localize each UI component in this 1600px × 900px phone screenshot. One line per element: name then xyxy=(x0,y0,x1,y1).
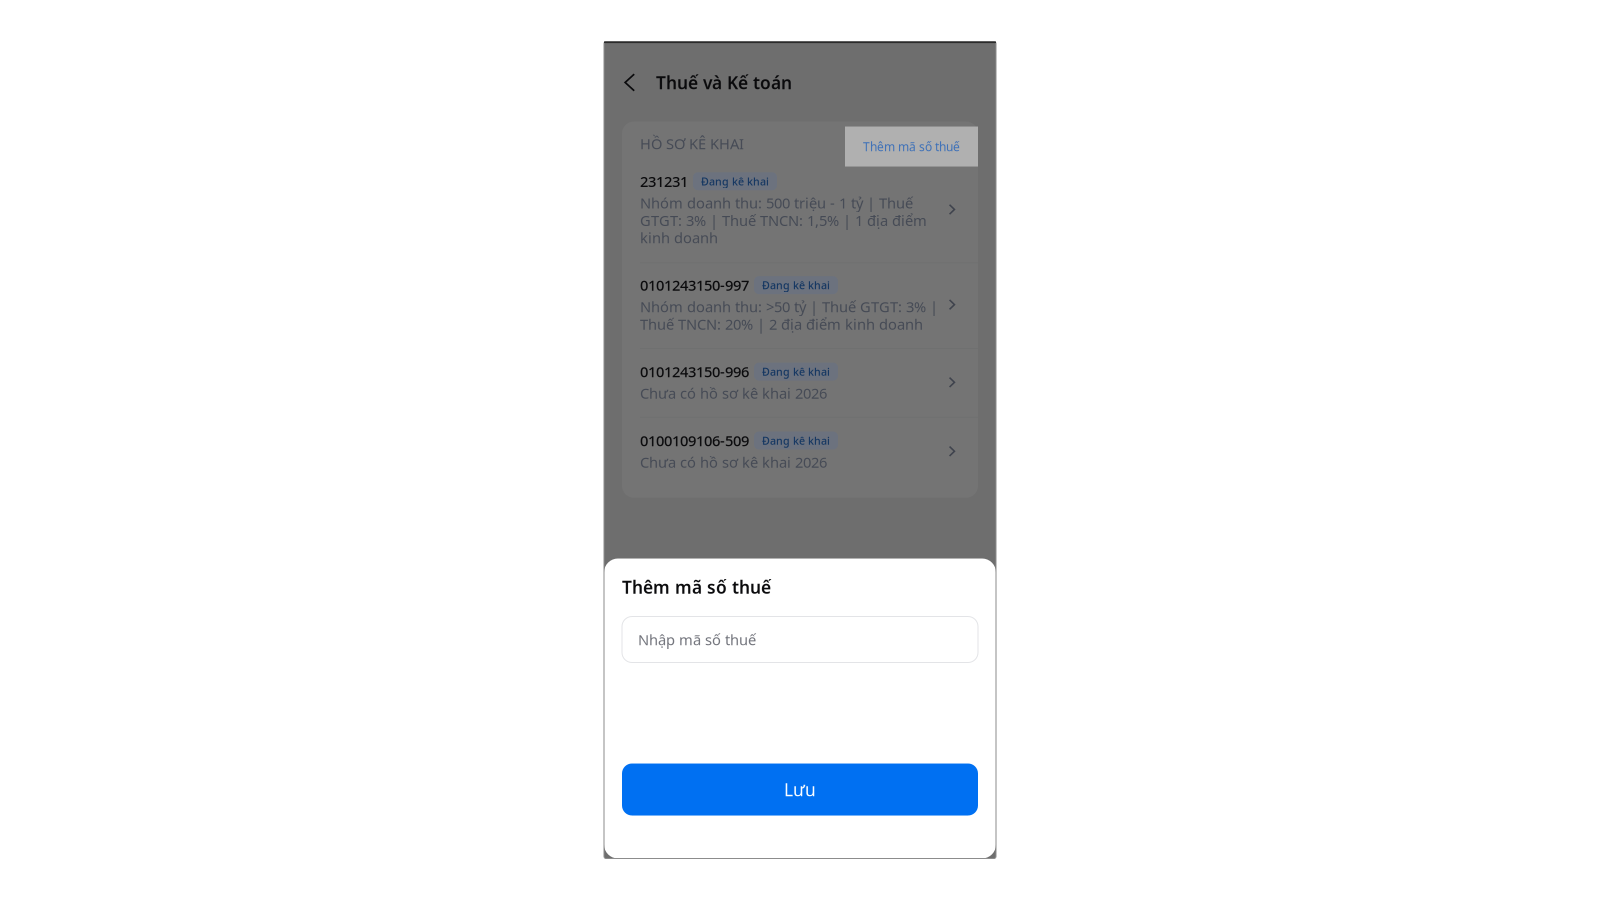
staticText: 231231 xyxy=(640,171,688,191)
staticText: Đang kê khai xyxy=(762,364,830,379)
staticText: Chưa có hồ sơ kê khai 2026 xyxy=(640,452,827,472)
staticText: Đang kê khai xyxy=(701,174,769,188)
staticText: Thuế và Kế toán xyxy=(656,71,792,94)
staticText: Nhóm doanh thu: >50 tỷ | Thuế GTGT: 3% |… xyxy=(640,297,938,334)
button[interactable]: 231231 xyxy=(622,163,978,262)
staticText: 0101243150-996 xyxy=(640,362,749,381)
button[interactable]: Lưu xyxy=(622,763,978,815)
staticText: Đang kê khai xyxy=(762,278,830,292)
button[interactable]: 0100109106-509 xyxy=(622,418,978,486)
staticText: Lưu xyxy=(784,778,816,801)
button[interactable]: 0101243150-996 xyxy=(622,349,978,417)
staticText: Thêm mã số thuế xyxy=(863,138,960,154)
staticText: 0100109106-509 xyxy=(640,431,749,450)
staticText: Đang kê khai xyxy=(762,433,830,448)
button[interactable]: Thêm mã số thuế xyxy=(845,126,978,166)
staticText: Nhóm doanh thu: 500 triệu - 1 tỷ | Thuế … xyxy=(640,193,927,247)
button[interactable]: 0101243150-997 xyxy=(622,263,978,348)
button[interactable]: Nhập mã số thuế xyxy=(622,616,978,662)
staticText: HỒ SƠ KÊ KHAI xyxy=(640,134,744,153)
staticText: Thêm mã số thuế xyxy=(622,575,771,598)
staticText: 0101243150-997 xyxy=(640,275,749,295)
staticText: Nhập mã số thuế xyxy=(638,630,756,649)
button[interactable]: Back xyxy=(624,62,656,102)
staticText: Chưa có hồ sơ kê khai 2026 xyxy=(640,383,827,403)
